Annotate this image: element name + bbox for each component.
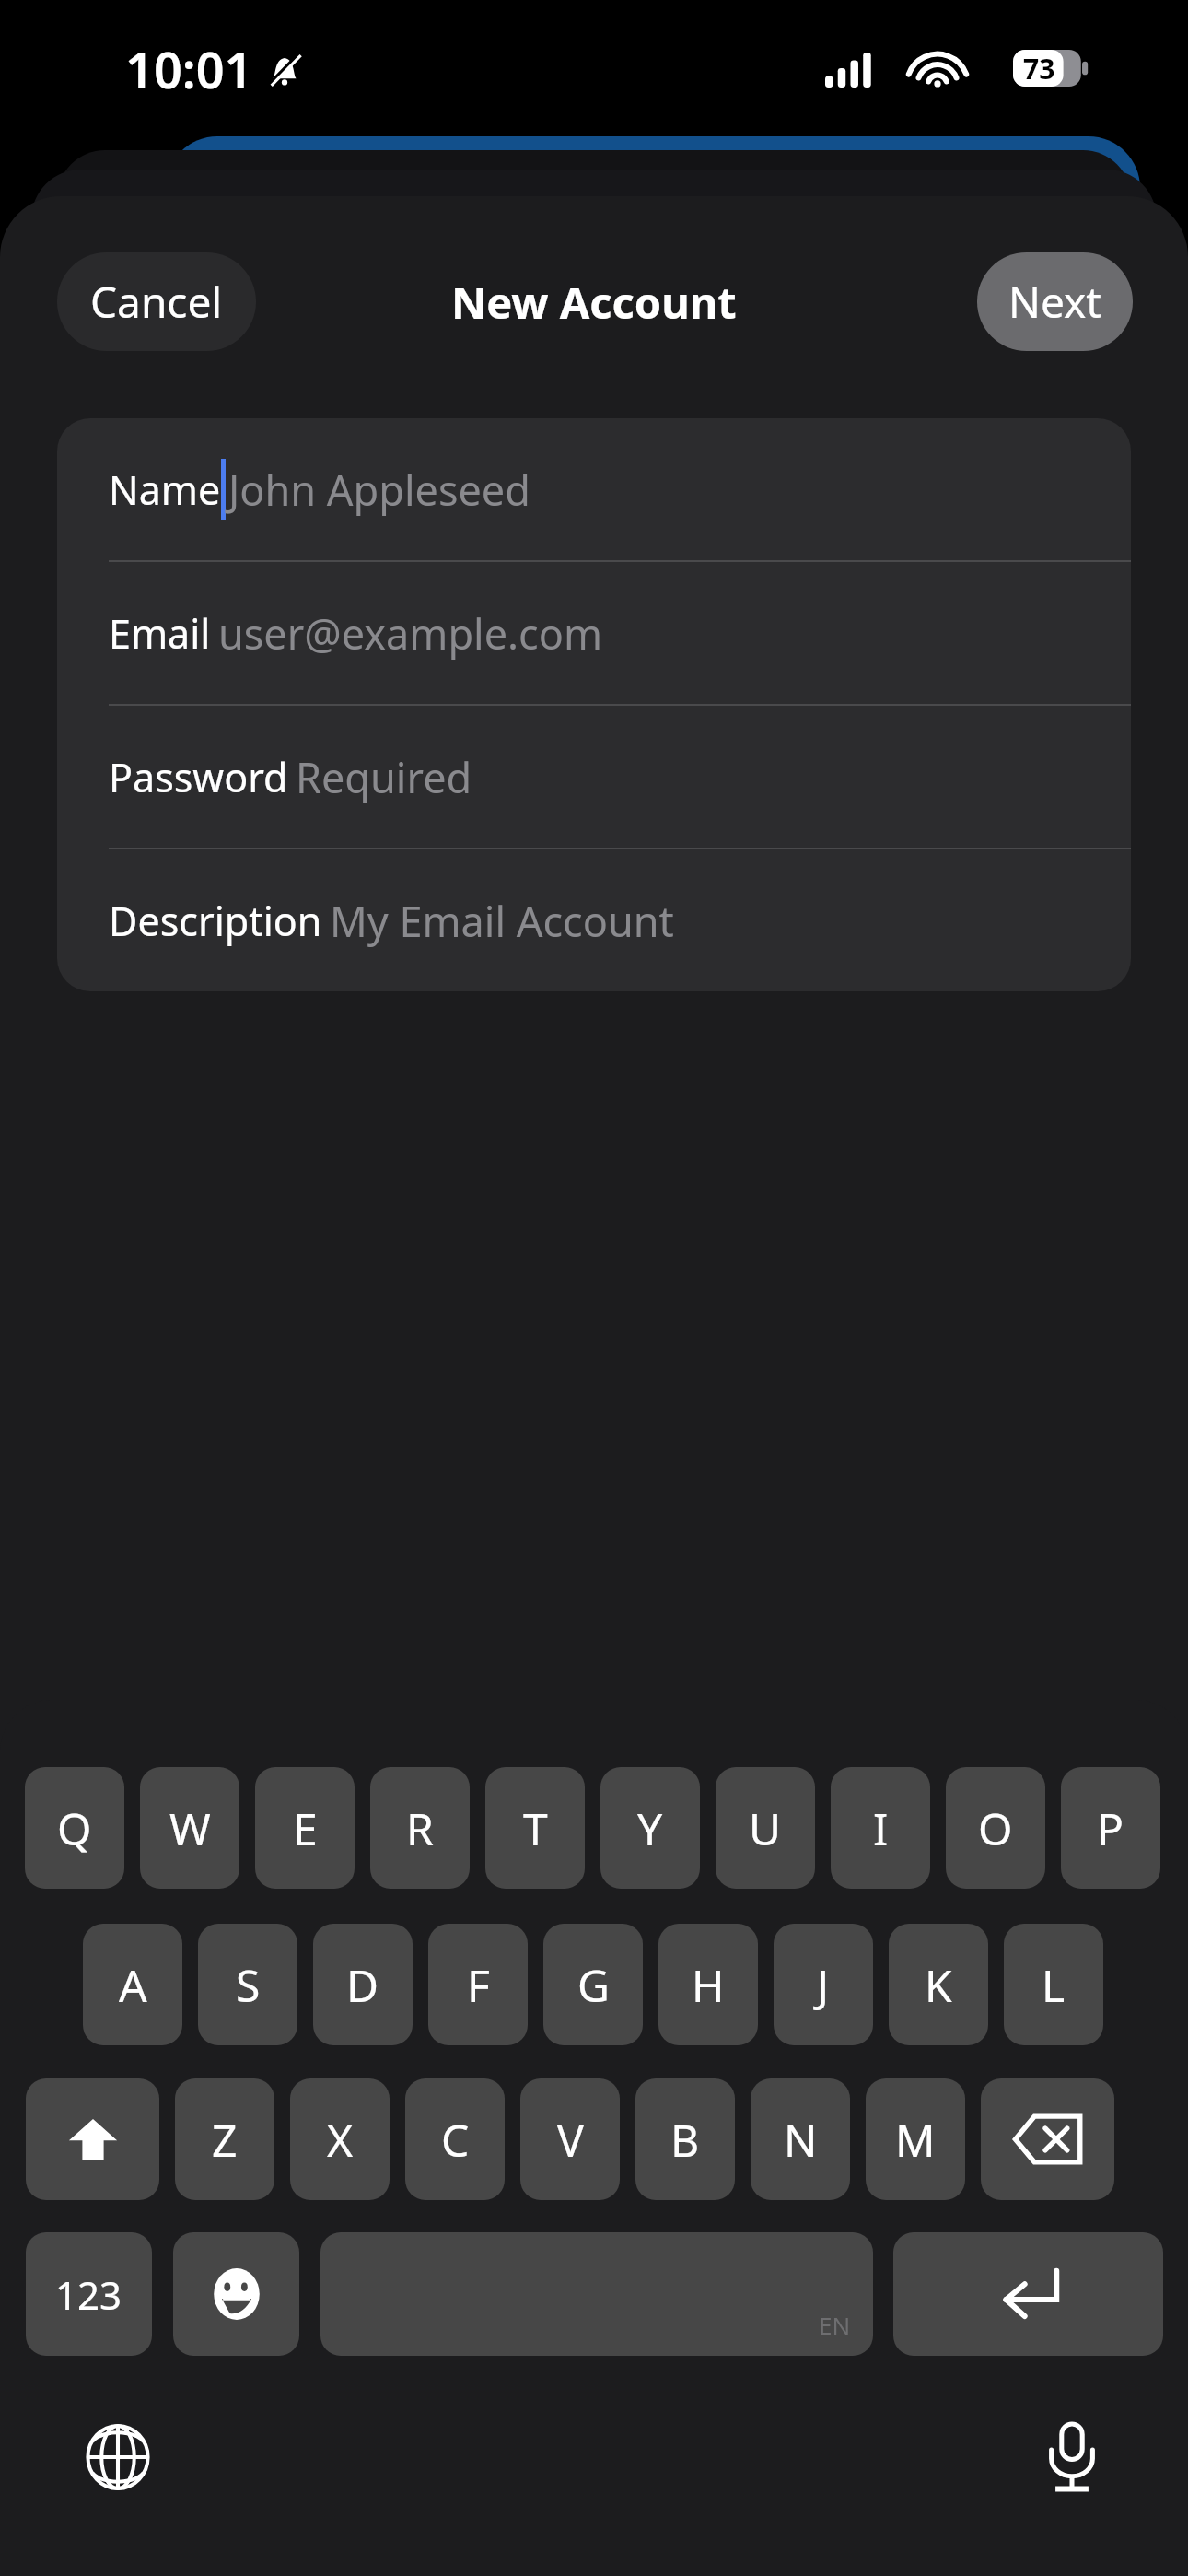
button[interactable]: D bbox=[313, 1924, 413, 2045]
staticText: M bbox=[895, 2110, 936, 2170]
staticText: K bbox=[925, 1955, 952, 2015]
button[interactable]: K bbox=[889, 1924, 988, 2045]
button[interactable]: M bbox=[866, 2078, 965, 2200]
button[interactable]: E bbox=[255, 1767, 355, 1889]
button[interactable]: J bbox=[774, 1924, 873, 2045]
staticText: S bbox=[236, 1955, 261, 2015]
staticText: C bbox=[441, 2110, 470, 2170]
button[interactable]: I bbox=[831, 1767, 930, 1889]
button[interactable]: Shift bbox=[26, 2078, 159, 2200]
button[interactable]: V bbox=[520, 2078, 620, 2200]
button[interactable]: A bbox=[83, 1924, 182, 2045]
button[interactable]: Description bbox=[57, 849, 1131, 991]
button[interactable]: T bbox=[485, 1767, 585, 1889]
button[interactable]: Q bbox=[25, 1767, 124, 1889]
button[interactable]: Cancel bbox=[57, 252, 256, 351]
staticText: Required bbox=[296, 749, 472, 805]
staticText: New Account bbox=[451, 273, 737, 332]
staticText: P bbox=[1097, 1798, 1124, 1858]
staticText: G bbox=[577, 1955, 610, 2015]
button[interactable]: B bbox=[635, 2078, 735, 2200]
button[interactable]: O bbox=[946, 1767, 1045, 1889]
button[interactable]: C bbox=[405, 2078, 505, 2200]
staticText: O bbox=[978, 1798, 1013, 1858]
button[interactable]: F bbox=[428, 1924, 528, 2045]
staticText: U bbox=[749, 1798, 782, 1858]
staticText: Y bbox=[637, 1798, 663, 1858]
button[interactable]: U bbox=[716, 1767, 815, 1889]
button[interactable]: H bbox=[658, 1924, 758, 2045]
button[interactable]: G bbox=[543, 1924, 643, 2045]
button[interactable]: Y bbox=[600, 1767, 700, 1889]
staticText: T bbox=[523, 1798, 548, 1858]
staticText: X bbox=[327, 2110, 354, 2170]
button[interactable]: X bbox=[290, 2078, 390, 2200]
button[interactable]: Emoji bbox=[173, 2232, 299, 2356]
button[interactable]: Enter bbox=[893, 2232, 1163, 2356]
staticText: D bbox=[346, 1955, 379, 2015]
button[interactable]: Email bbox=[57, 562, 1131, 704]
staticText: Next bbox=[1008, 273, 1101, 331]
staticText: Q bbox=[57, 1798, 92, 1858]
staticText: EN bbox=[819, 2309, 851, 2341]
staticText: Email bbox=[109, 606, 211, 661]
staticText: L bbox=[1042, 1955, 1066, 2015]
button[interactable]: N bbox=[751, 2078, 850, 2200]
button[interactable]: Change language bbox=[72, 2411, 164, 2503]
button[interactable]: Space bbox=[320, 2232, 873, 2356]
staticText: W bbox=[169, 1798, 211, 1858]
staticText: John Appleseed bbox=[228, 462, 530, 518]
staticText: Z bbox=[212, 2110, 238, 2170]
staticText: My Email Account bbox=[330, 893, 674, 949]
staticText: 123 bbox=[55, 2268, 122, 2321]
staticText: B bbox=[670, 2110, 700, 2170]
button[interactable]: Name bbox=[57, 418, 1131, 560]
button[interactable]: Backspace bbox=[981, 2078, 1114, 2200]
button[interactable]: 123 bbox=[26, 2232, 152, 2356]
staticText: 73 bbox=[1023, 50, 1055, 88]
staticText: R bbox=[406, 1798, 434, 1858]
staticText: A bbox=[119, 1955, 147, 2015]
button[interactable]: Password bbox=[57, 706, 1131, 848]
staticText: I bbox=[873, 1798, 889, 1858]
button[interactable]: Next bbox=[977, 252, 1133, 351]
button[interactable]: W bbox=[140, 1767, 239, 1889]
button[interactable]: Voice input bbox=[1026, 2411, 1118, 2503]
staticText: user@example.com bbox=[218, 605, 603, 662]
staticText: E bbox=[293, 1798, 318, 1858]
staticText: F bbox=[467, 1955, 490, 2015]
button[interactable]: Z bbox=[175, 2078, 274, 2200]
staticText: Name bbox=[109, 463, 221, 517]
staticText: J bbox=[817, 1955, 830, 2015]
button[interactable]: L bbox=[1004, 1924, 1103, 2045]
button[interactable]: R bbox=[370, 1767, 470, 1889]
staticText: 10:01 bbox=[125, 35, 253, 103]
staticText: H bbox=[692, 1955, 725, 2015]
staticText: N bbox=[784, 2110, 818, 2170]
button[interactable]: P bbox=[1061, 1767, 1160, 1889]
staticText: V bbox=[557, 2110, 584, 2170]
staticText: Description bbox=[109, 894, 322, 948]
staticText: Password bbox=[109, 750, 288, 804]
staticText: Cancel bbox=[90, 273, 223, 331]
button[interactable]: S bbox=[198, 1924, 297, 2045]
